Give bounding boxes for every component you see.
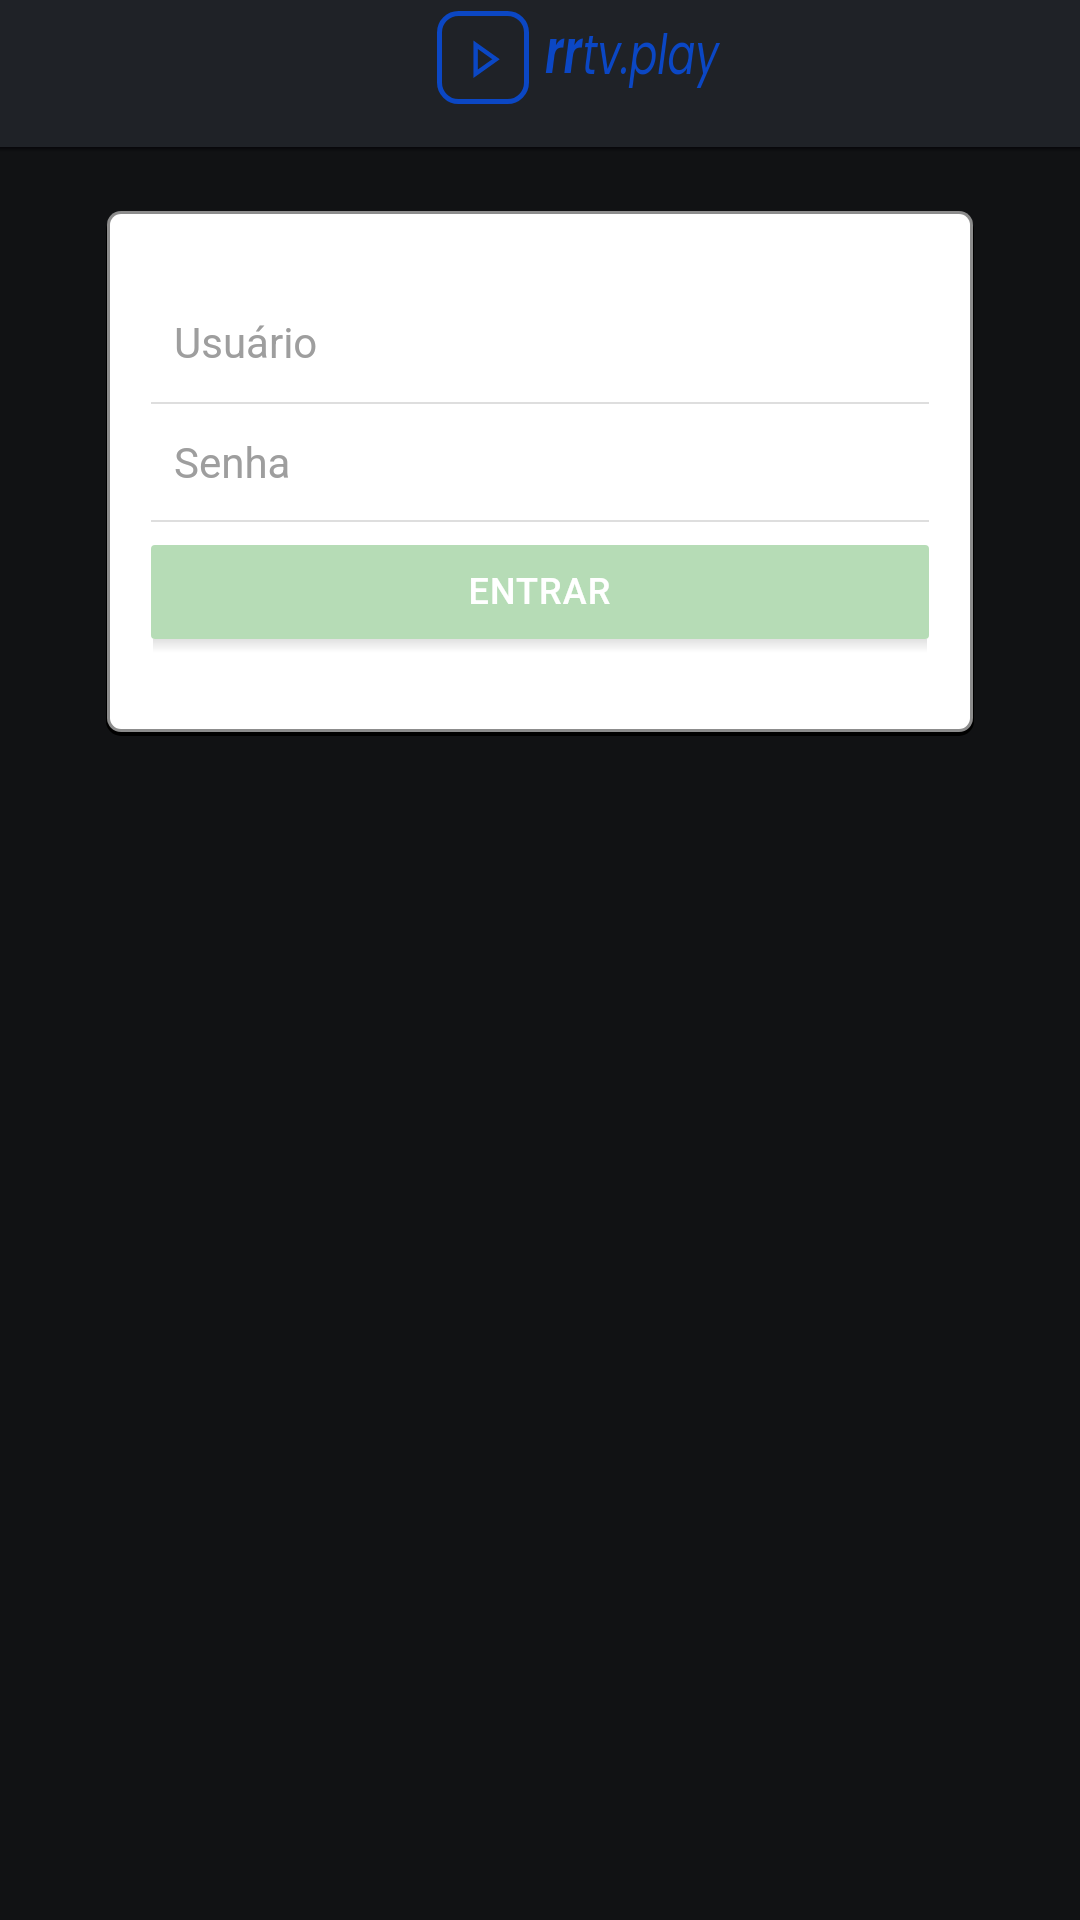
staticText: Senha: [174, 439, 291, 488]
button[interactable]: rrtv.play: [437, 11, 529, 104]
button[interactable]: Senha: [151, 404, 929, 522]
staticText: ENTRAR: [468, 571, 612, 613]
staticText: rr: [545, 8, 583, 95]
button[interactable]: ENTRAR: [151, 545, 929, 639]
button[interactable]: Usuário: [151, 214, 929, 404]
staticText: Usuário: [174, 319, 318, 368]
staticText: tv.play: [583, 15, 719, 93]
